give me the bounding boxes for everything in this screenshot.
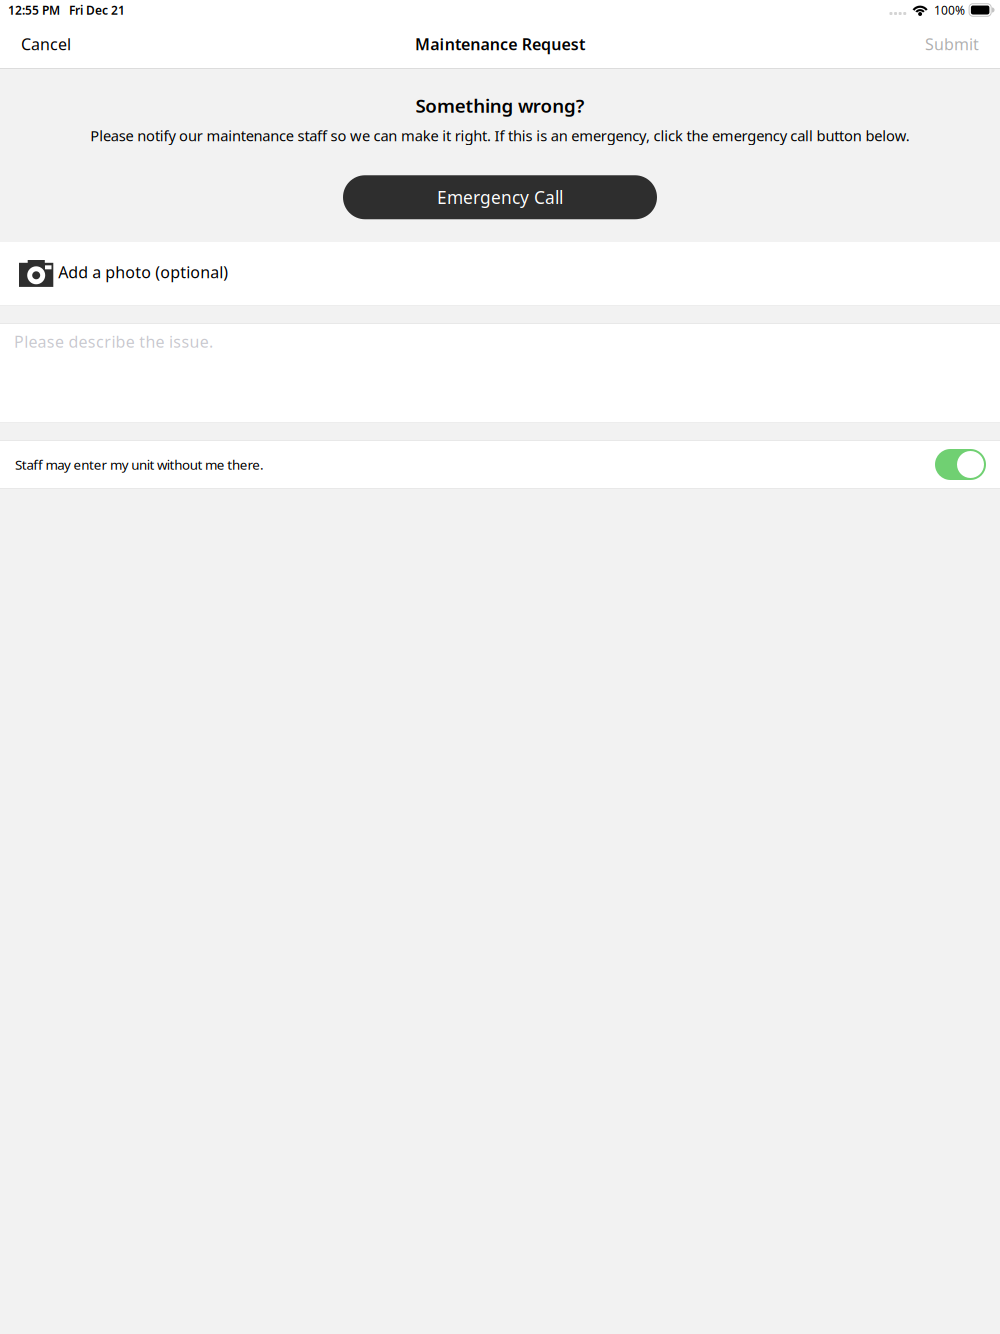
staticText: Emergency Call — [437, 186, 563, 209]
button[interactable]: Staff may enter my unit without me there — [935, 449, 986, 480]
button[interactable]: Add a photo (optional) — [0, 242, 1000, 305]
button[interactable]: Please describe the issue. — [0, 324, 1000, 422]
staticText: Fri Dec 21 — [69, 2, 125, 18]
staticText: Staff may enter my unit without me there… — [15, 456, 264, 473]
staticText: Something wrong? — [415, 93, 585, 118]
staticText: 100% — [934, 2, 965, 18]
button[interactable]: Cancel — [0, 28, 92, 60]
staticText: Please notify our maintenance staff so w… — [90, 126, 910, 145]
button[interactable]: Submit — [904, 28, 1000, 60]
staticText: Add a photo (optional) — [58, 261, 228, 283]
staticText: Please describe the issue. — [14, 331, 213, 352]
staticText: Maintenance Request — [415, 33, 585, 55]
staticText: Cancel — [21, 33, 71, 55]
button[interactable]: Emergency Call — [343, 175, 657, 219]
staticText: 12:55 PM — [8, 2, 60, 18]
staticText: Submit — [925, 33, 979, 55]
